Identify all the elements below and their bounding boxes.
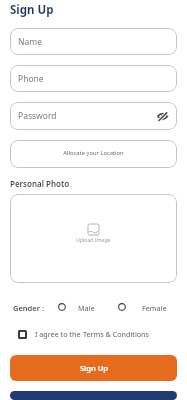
staticText: I agree to the — [35, 329, 83, 339]
staticText: Male — [78, 303, 95, 313]
staticText: Sign Up — [80, 363, 108, 373]
button[interactable]: Female — [118, 303, 167, 313]
button[interactable]: Male — [58, 303, 95, 313]
button[interactable]: Password — [10, 102, 177, 130]
button[interactable]: I agree to the — [18, 329, 149, 339]
button[interactable]: Login — [10, 391, 177, 400]
staticText: Upload Image — [76, 236, 111, 243]
staticText: Personal Photo — [10, 178, 70, 189]
other: Show password — [157, 112, 168, 121]
staticText: Sign Up — [10, 2, 54, 18]
button[interactable]: Phone — [10, 65, 177, 92]
staticText: Phone — [18, 73, 44, 85]
staticText: Female — [142, 303, 167, 313]
button[interactable]: Sign Up — [10, 355, 177, 381]
button[interactable]: Name — [10, 28, 177, 55]
staticText: Password — [18, 110, 57, 122]
staticText: Gender : — [13, 303, 44, 313]
staticText: Allocate your Location — [10, 149, 177, 157]
staticText: Name — [18, 36, 42, 48]
button[interactable]: Upload Image — [10, 194, 177, 283]
button[interactable]: Allocate your Location — [10, 140, 177, 168]
staticText: Terms & Conditions — [83, 329, 149, 339]
